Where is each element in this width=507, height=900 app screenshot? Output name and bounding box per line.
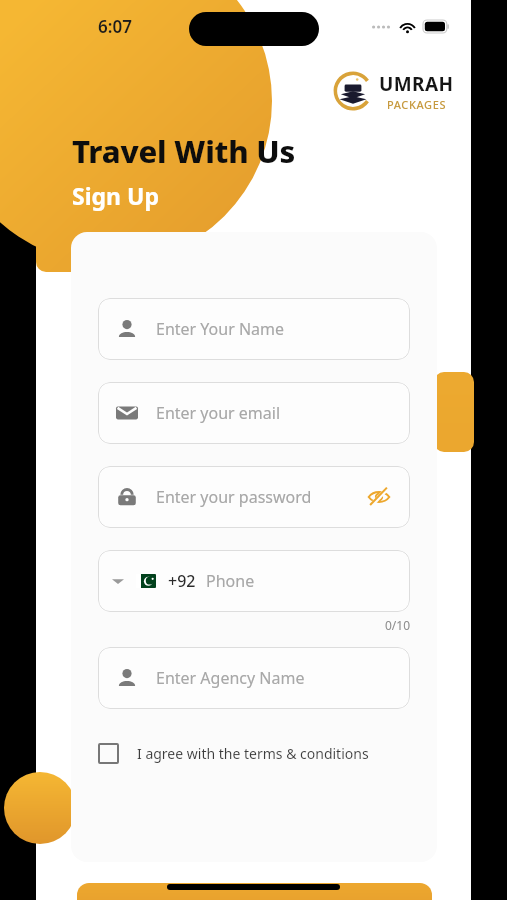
staticText: Enter your email bbox=[156, 402, 281, 424]
button[interactable]: Enter your password bbox=[98, 466, 410, 528]
staticText: Enter your password bbox=[156, 486, 312, 508]
staticText: PACKAGES bbox=[387, 97, 447, 112]
button[interactable]: Enter Your Name bbox=[98, 298, 410, 360]
button[interactable]: Enter Agency Name bbox=[98, 647, 410, 709]
staticText: I agree with the terms & conditions bbox=[137, 744, 369, 763]
staticText: Sign Up bbox=[72, 180, 159, 211]
button[interactable]: Enter your email bbox=[98, 382, 410, 444]
button[interactable]: +92 bbox=[98, 550, 410, 612]
staticText: 0/10 bbox=[98, 617, 410, 633]
staticText: Enter Your Name bbox=[156, 318, 285, 340]
staticText: Travel With Us bbox=[72, 130, 296, 172]
button[interactable]: Show password bbox=[366, 484, 392, 510]
staticText: Enter Agency Name bbox=[156, 667, 305, 689]
staticText: UMRAH bbox=[379, 71, 454, 97]
button[interactable]: Sign Up bbox=[77, 883, 432, 900]
button[interactable]: I agree with the terms & conditions bbox=[98, 739, 410, 768]
staticText: Phone bbox=[206, 570, 255, 592]
staticText: +92 bbox=[168, 570, 196, 592]
staticText: 6:07 bbox=[98, 15, 132, 38]
